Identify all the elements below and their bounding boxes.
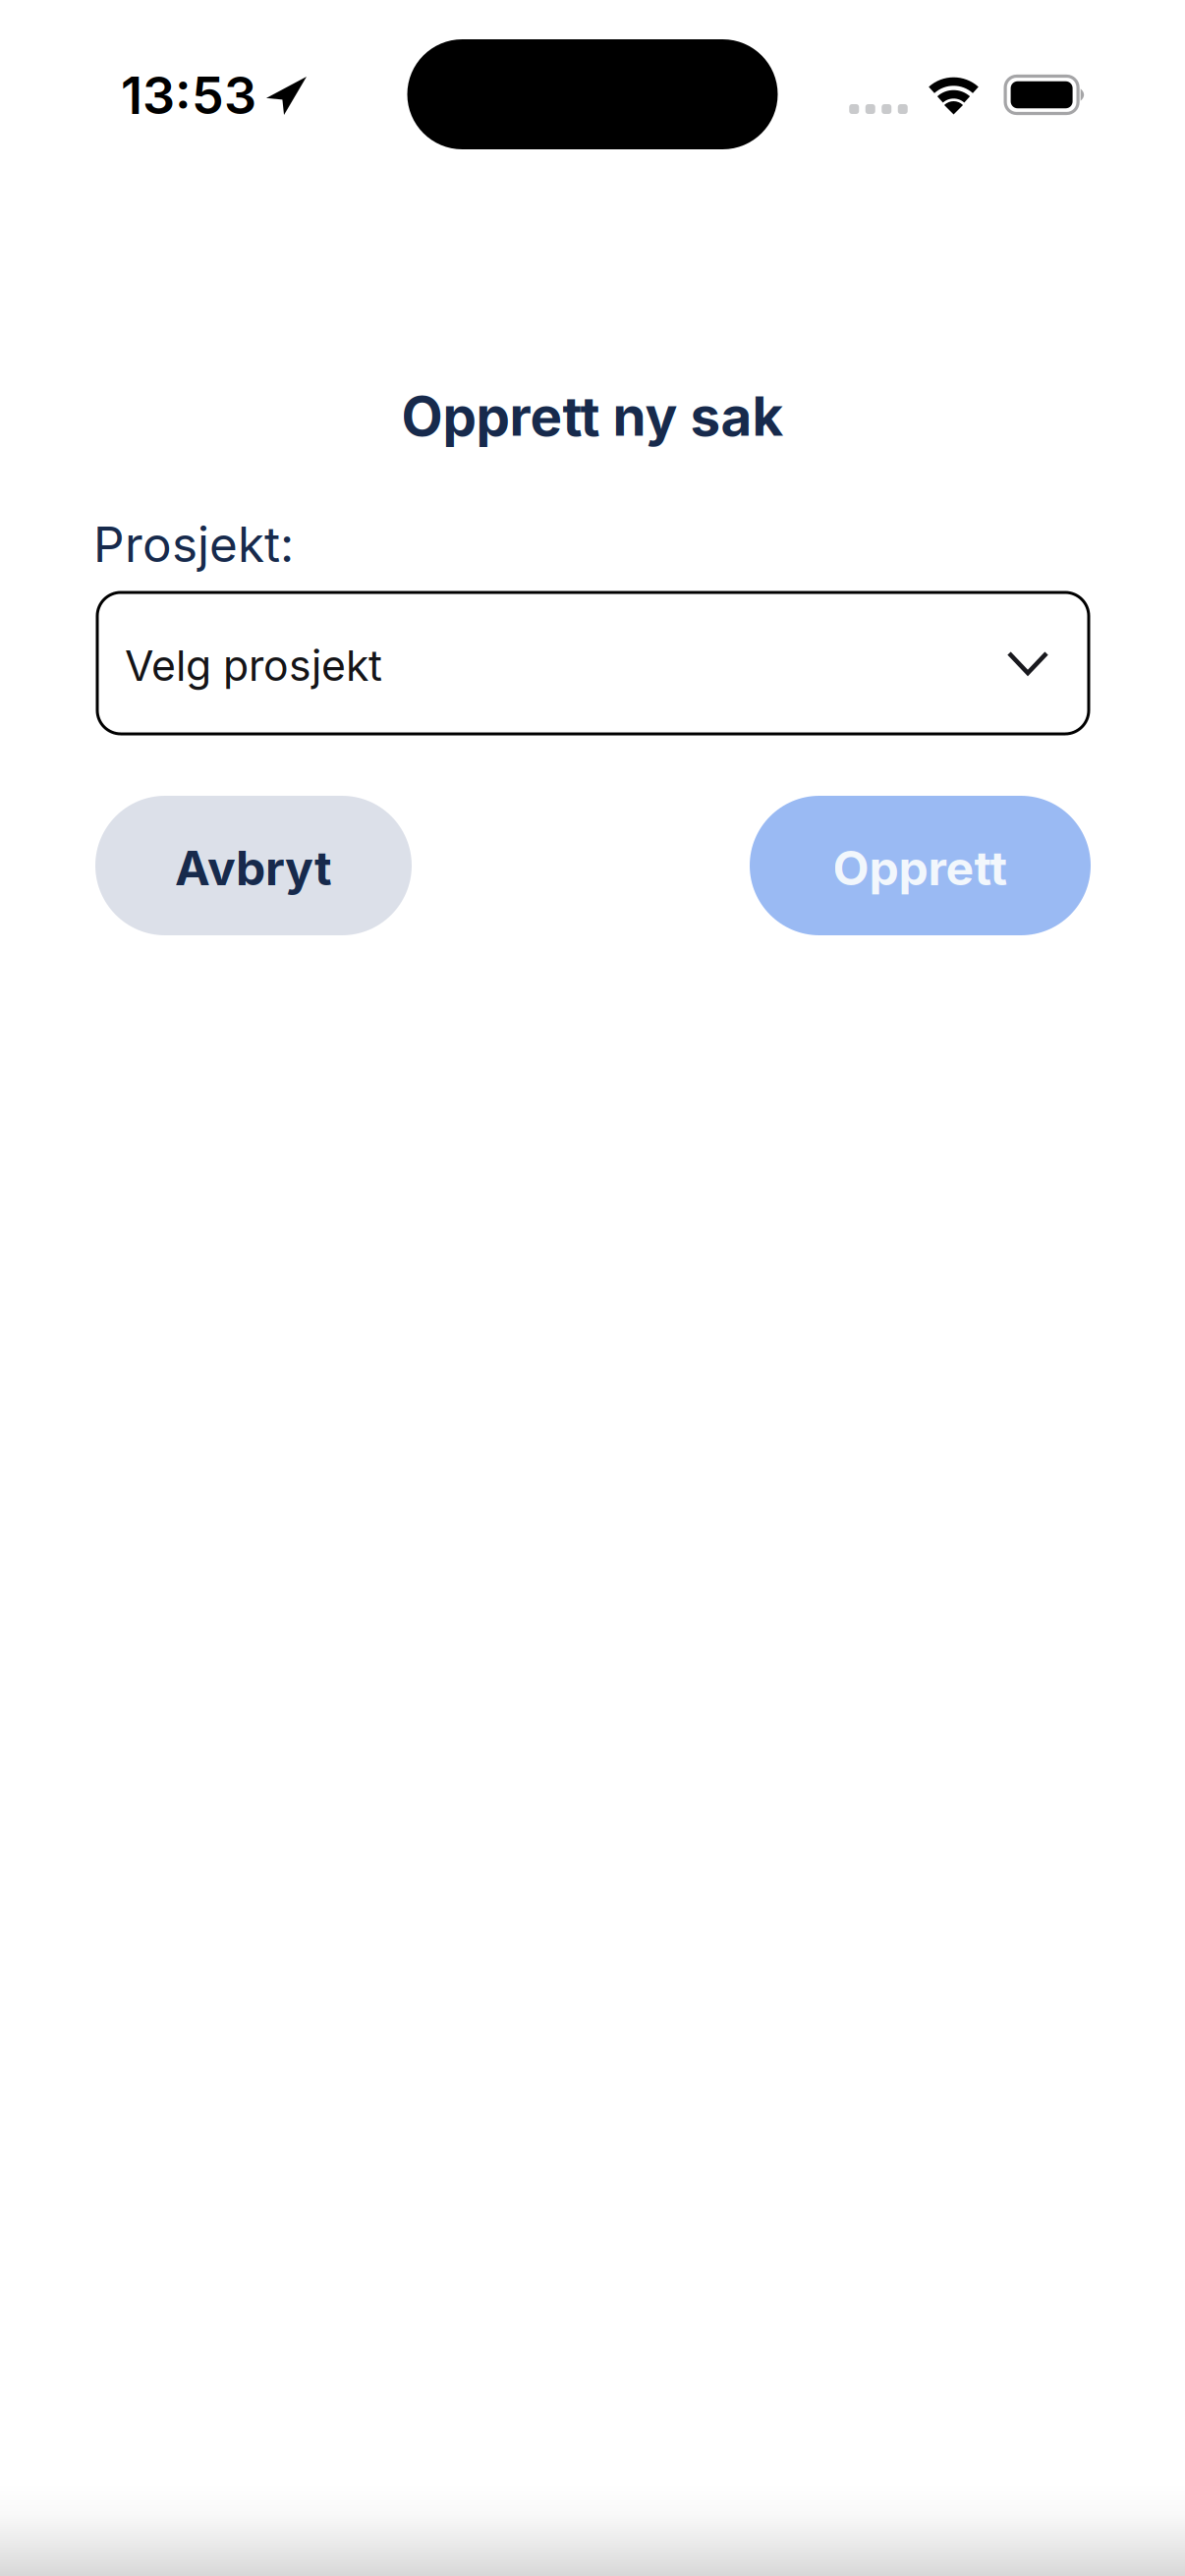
staticText: Avbryt	[175, 840, 332, 896]
staticText: 13:53	[121, 65, 256, 125]
button[interactable]: Opprett	[750, 796, 1091, 935]
button[interactable]: Velg prosjekt	[97, 592, 1089, 734]
staticText: Velg prosjekt	[125, 641, 382, 690]
staticText: Prosjekt:	[93, 516, 294, 573]
button[interactable]: Avbryt	[95, 796, 412, 935]
staticText: Opprett	[833, 840, 1008, 896]
staticText: Opprett ny sak	[401, 384, 784, 448]
